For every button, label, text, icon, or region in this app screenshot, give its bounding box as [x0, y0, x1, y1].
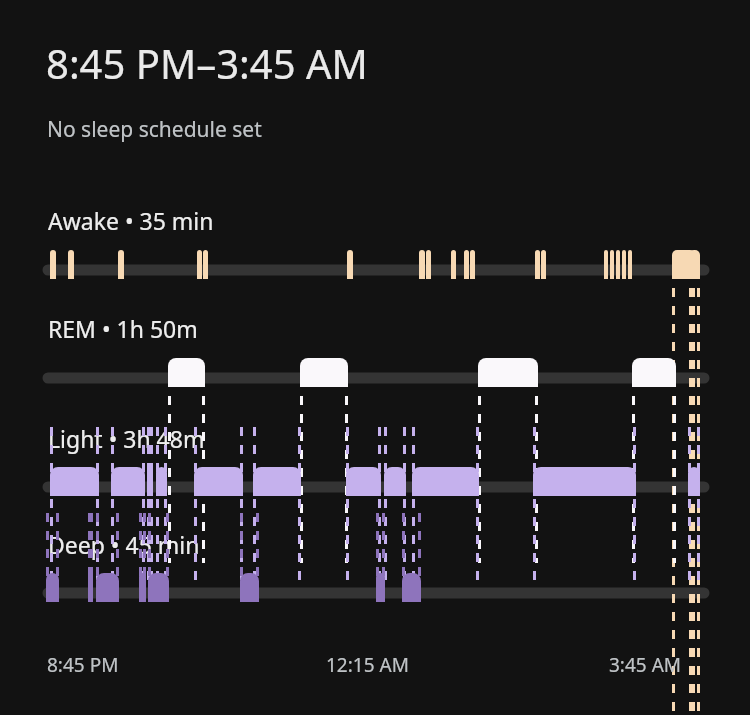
button[interactable]: Awake • 35 min: [46, 203, 216, 238]
staticText: Awake • 35 min: [48, 205, 214, 236]
button[interactable]: REM • 1h 50m: [46, 311, 200, 346]
staticText: REM • 1h 50m: [48, 313, 198, 344]
staticText: 3:45 AM: [609, 652, 682, 678]
button[interactable]: Deep • 45 min: [46, 527, 202, 562]
button[interactable]: Light • 3h 48m: [46, 421, 207, 456]
staticText: Deep • 45 min: [48, 529, 200, 560]
button[interactable]: 8:45 PM–3:45 AM: [0, 0, 750, 715]
staticText: 8:45 PM–3:45 AM: [46, 36, 368, 90]
staticText: 12:15 AM: [326, 652, 409, 678]
staticText: Light • 3h 48m: [48, 423, 205, 454]
staticText: 8:45 PM: [47, 652, 119, 678]
staticText: No sleep schedule set: [47, 115, 262, 144]
